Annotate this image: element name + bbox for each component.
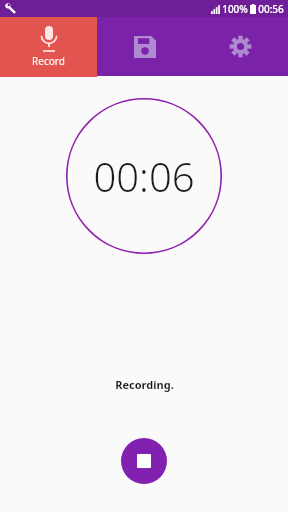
staticText: 00:06 [93,149,195,203]
button[interactable]: Stop recording [121,438,167,484]
staticText: Record [32,54,65,68]
staticText: Recording. [115,377,174,392]
button[interactable]: Settings [192,17,288,76]
staticText: 100% [222,2,248,16]
button[interactable]: Save [97,17,192,76]
staticText: 00:56 [258,2,284,16]
button[interactable]: Record [0,17,97,76]
